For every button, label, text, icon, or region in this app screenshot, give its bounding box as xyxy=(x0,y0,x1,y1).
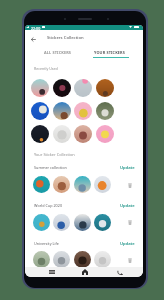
button[interactable]: Sticker xyxy=(96,102,114,120)
button[interactable]: Sticker xyxy=(33,176,50,193)
button[interactable]: Sticker xyxy=(74,251,91,268)
button[interactable]: Sticker xyxy=(53,251,70,268)
button[interactable]: Update xyxy=(119,240,136,248)
staticText: Update xyxy=(120,165,135,171)
button[interactable]: Sticker xyxy=(94,176,111,193)
staticText: YOUR STICKERS xyxy=(94,50,125,55)
button[interactable]: Sticker xyxy=(74,214,91,231)
staticText: Your Sticker Collection xyxy=(34,152,75,157)
button[interactable]: YOUR STICKERS xyxy=(88,45,131,58)
button[interactable]: ALL STICKERS xyxy=(38,45,77,58)
staticText: Update xyxy=(120,203,135,209)
button[interactable]: Sticker xyxy=(74,79,92,97)
button[interactable]: Sticker xyxy=(53,214,70,231)
button[interactable]: Sticker xyxy=(31,102,49,120)
button[interactable]: Sticker xyxy=(31,125,49,143)
button[interactable]: Sticker xyxy=(33,214,50,231)
button[interactable]: Sticker xyxy=(53,125,71,143)
button[interactable]: Sticker xyxy=(74,102,92,120)
button[interactable]: Sticker xyxy=(33,251,50,268)
button[interactable]: Sticker xyxy=(53,79,71,97)
button[interactable]: Home xyxy=(79,267,91,277)
button[interactable]: Recents xyxy=(46,267,58,277)
button[interactable]: Sticker xyxy=(94,214,111,231)
staticText: Update xyxy=(120,241,135,247)
button[interactable]: Sticker xyxy=(74,176,91,193)
button[interactable]: Delete xyxy=(125,218,134,226)
button[interactable]: Sticker xyxy=(53,102,71,120)
button[interactable]: Update xyxy=(119,202,136,210)
staticText: 22:00 xyxy=(31,26,41,31)
button[interactable]: Delete xyxy=(125,181,134,189)
button[interactable]: Delete xyxy=(125,256,134,264)
button[interactable]: Update xyxy=(119,164,136,172)
button[interactable]: Back xyxy=(28,34,39,45)
staticText: Recently Used xyxy=(34,66,58,71)
staticText: Stickers Collection xyxy=(47,35,84,41)
button[interactable]: Sticker xyxy=(96,125,114,143)
staticText: ALL STICKERS xyxy=(44,50,72,55)
staticText: Summer collection xyxy=(34,165,67,170)
staticText: University Life xyxy=(34,241,59,246)
button[interactable]: Sticker xyxy=(31,79,49,97)
button[interactable]: Back xyxy=(114,267,126,277)
button[interactable]: Sticker xyxy=(96,79,114,97)
staticText: World Cup 2020 xyxy=(34,203,63,208)
button[interactable]: Sticker xyxy=(74,125,92,143)
button[interactable]: Sticker xyxy=(53,176,70,193)
button[interactable]: Sticker xyxy=(94,251,111,268)
